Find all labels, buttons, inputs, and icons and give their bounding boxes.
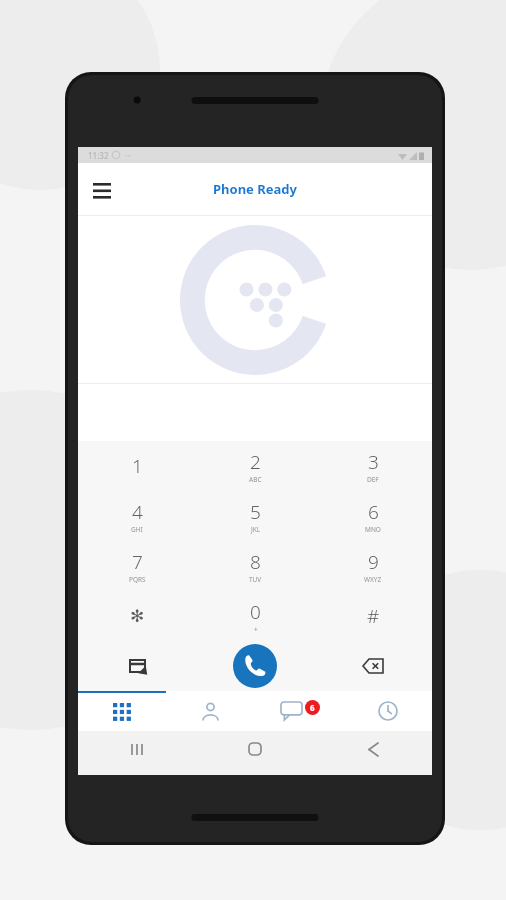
button[interactable]: Contacts [166,691,254,731]
button[interactable]: 5 [196,491,314,541]
staticText: MNO [365,525,381,534]
button[interactable]: Back [314,731,432,767]
button[interactable]: Recent calls [343,691,432,731]
staticText: 5 [250,499,261,525]
staticText: 0 [250,599,261,625]
button[interactable]: Open navigation menu [86,173,118,205]
staticText: TUV [249,575,262,584]
staticText: 7 [132,549,143,575]
staticText: 3 [368,449,379,475]
staticText: 2 [250,449,261,475]
button[interactable]: 6 [314,491,432,541]
button[interactable]: Backspace [314,641,432,691]
button[interactable]: 2 [196,441,314,491]
staticText: + [254,625,258,634]
button[interactable]: 0 [196,591,314,641]
staticText: DEF [367,475,379,484]
button[interactable]: 1 [78,441,196,491]
button[interactable]: ✻ [78,591,196,641]
staticText: PQRS [129,575,146,584]
staticText: 6 [368,499,379,525]
button[interactable]: Dialpad [78,691,166,731]
button[interactable]: 7 [78,541,196,591]
button[interactable]: 4 [78,491,196,541]
staticText: 11:32 [88,150,109,161]
button[interactable]: Call [233,644,277,688]
staticText: 1 [132,453,143,479]
staticText: GHI [131,525,143,534]
staticText: 4 [132,499,143,525]
staticText: 8 [250,549,261,575]
staticText: 9 [368,549,379,575]
staticText: ··· [125,150,132,161]
button[interactable]: 3 [314,441,432,491]
button[interactable]: Home [196,731,314,767]
button[interactable]: 9 [314,541,432,591]
button[interactable]: # [314,591,432,641]
staticText: # [367,603,380,629]
staticText: 6 [310,702,315,713]
button[interactable]: Recent apps [78,731,196,767]
button[interactable]: Messages, 6 unread [254,691,343,731]
button[interactable]: 8 [196,541,314,591]
staticText: JKL [251,525,261,534]
button[interactable]: Voicemail [78,641,196,691]
staticText: Phone Ready [213,180,297,198]
staticText: ✻ [130,606,145,626]
staticText: ABC [249,475,262,484]
staticText: WXYZ [364,575,382,584]
